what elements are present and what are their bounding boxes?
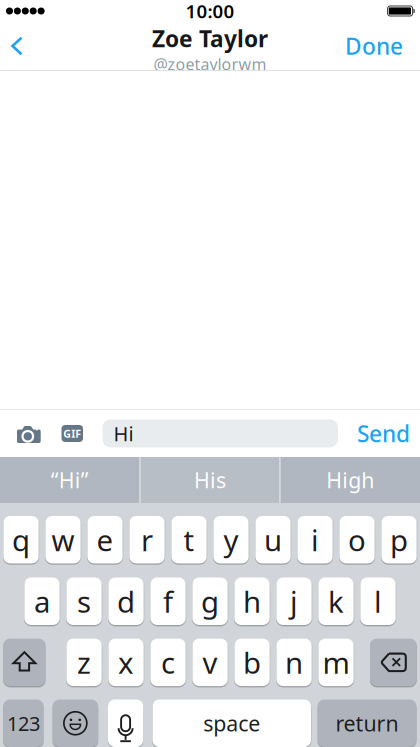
- staticText: o: [348, 520, 366, 559]
- button[interactable]: space: [152, 699, 311, 747]
- button[interactable]: c: [150, 639, 186, 686]
- staticText: e: [96, 520, 113, 559]
- staticText: z: [77, 643, 91, 682]
- staticText: s: [77, 582, 91, 621]
- button[interactable]: Emoji: [53, 699, 98, 747]
- button[interactable]: t: [171, 516, 207, 563]
- staticText: y: [223, 520, 238, 559]
- staticText: c: [161, 643, 175, 682]
- button[interactable]: v: [192, 639, 228, 686]
- button[interactable]: u: [255, 516, 291, 563]
- button[interactable]: Done: [345, 31, 420, 61]
- staticText: Hi: [113, 420, 133, 447]
- button[interactable]: Camera: [0, 424, 41, 443]
- staticText: a: [34, 582, 50, 621]
- button[interactable]: d: [108, 577, 144, 625]
- staticText: m: [322, 643, 349, 682]
- button[interactable]: s: [66, 577, 102, 625]
- button[interactable]: p: [381, 516, 417, 563]
- button[interactable]: w: [45, 516, 81, 563]
- button[interactable]: a: [24, 577, 60, 625]
- staticText: w: [51, 520, 74, 559]
- button[interactable]: “Hi”: [0, 457, 139, 503]
- button[interactable]: His: [140, 457, 279, 503]
- staticText: GIF: [63, 426, 81, 441]
- staticText: n: [285, 643, 303, 682]
- button[interactable]: Shift: [3, 639, 45, 686]
- staticText: 10:00: [185, 0, 234, 23]
- button[interactable]: f: [150, 577, 186, 625]
- button[interactable]: Back: [0, 22, 34, 70]
- staticText: Zoe Taylor: [152, 23, 268, 53]
- staticText: h: [243, 582, 261, 621]
- button[interactable]: Delete: [370, 639, 417, 686]
- button[interactable]: z: [66, 639, 102, 686]
- staticText: Send: [357, 418, 410, 448]
- button[interactable]: n: [276, 639, 312, 686]
- staticText: “Hi”: [51, 466, 89, 494]
- button[interactable]: e: [87, 516, 123, 563]
- staticText: t: [183, 520, 194, 559]
- staticText: 123: [7, 710, 40, 737]
- button[interactable]: k: [318, 577, 354, 625]
- button[interactable]: 123: [3, 699, 43, 747]
- button[interactable]: o: [339, 516, 375, 563]
- button[interactable]: GIF: [41, 425, 83, 442]
- button[interactable]: Hi: [83, 419, 338, 447]
- staticText: u: [264, 520, 282, 559]
- staticText: j: [290, 582, 298, 621]
- staticText: f: [163, 582, 173, 621]
- staticText: r: [141, 520, 153, 559]
- button[interactable]: y: [213, 516, 249, 563]
- button[interactable]: l: [360, 577, 396, 625]
- staticText: v: [202, 643, 217, 682]
- staticText: p: [390, 520, 408, 559]
- staticText: Done: [345, 31, 403, 61]
- button[interactable]: x: [108, 639, 144, 686]
- button[interactable]: return: [318, 699, 416, 747]
- staticText: return: [335, 709, 398, 737]
- button[interactable]: i: [297, 516, 333, 563]
- staticText: l: [374, 582, 382, 621]
- button[interactable]: r: [129, 516, 165, 563]
- staticText: i: [311, 520, 319, 559]
- staticText: k: [328, 582, 344, 621]
- staticText: b: [243, 643, 261, 682]
- staticText: q: [12, 520, 30, 559]
- button[interactable]: b: [234, 639, 270, 686]
- button[interactable]: h: [234, 577, 270, 625]
- button[interactable]: q: [3, 516, 39, 563]
- button[interactable]: j: [276, 577, 312, 625]
- staticText: space: [203, 709, 260, 737]
- button[interactable]: Send: [357, 418, 420, 448]
- button[interactable]: High: [280, 457, 420, 503]
- staticText: His: [194, 466, 226, 494]
- staticText: x: [118, 643, 134, 682]
- button[interactable]: m: [318, 639, 354, 686]
- staticText: g: [201, 582, 219, 621]
- staticText: High: [326, 466, 374, 494]
- button[interactable]: Dictation: [108, 699, 143, 747]
- button[interactable]: g: [192, 577, 228, 625]
- staticText: @zoetaylorwm: [153, 53, 266, 75]
- staticText: d: [117, 582, 135, 621]
